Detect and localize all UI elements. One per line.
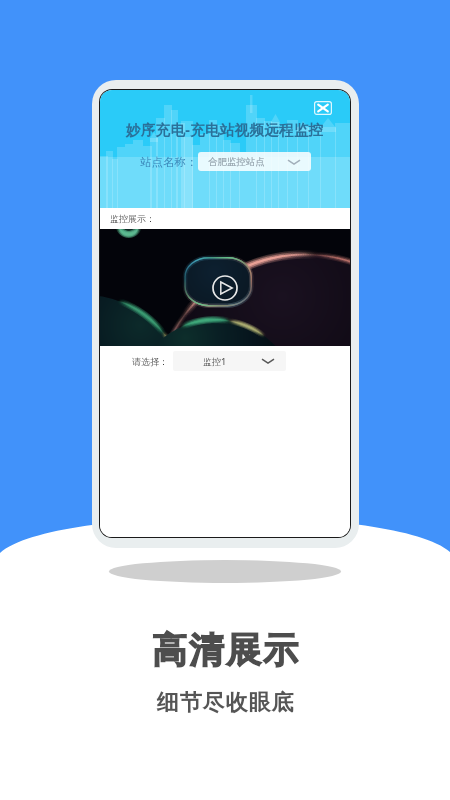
- button[interactable]: Close: [314, 101, 332, 115]
- staticText: 监控展示：: [110, 213, 155, 224]
- staticText: 细节尽收眼底: [156, 689, 294, 717]
- staticText: 妙序充电-充电站视频远程监控: [126, 119, 324, 139]
- button[interactable]: Play: [212, 275, 238, 301]
- button[interactable]: 合肥监控站点: [198, 152, 311, 171]
- staticText: 高清展示: [151, 628, 299, 672]
- button[interactable]: 监控1: [173, 351, 286, 371]
- staticText: 合肥监控站点: [208, 156, 265, 168]
- staticText: 请选择：: [132, 356, 168, 367]
- staticText: 监控1: [203, 355, 227, 367]
- staticText: 站点名称：: [140, 155, 198, 169]
